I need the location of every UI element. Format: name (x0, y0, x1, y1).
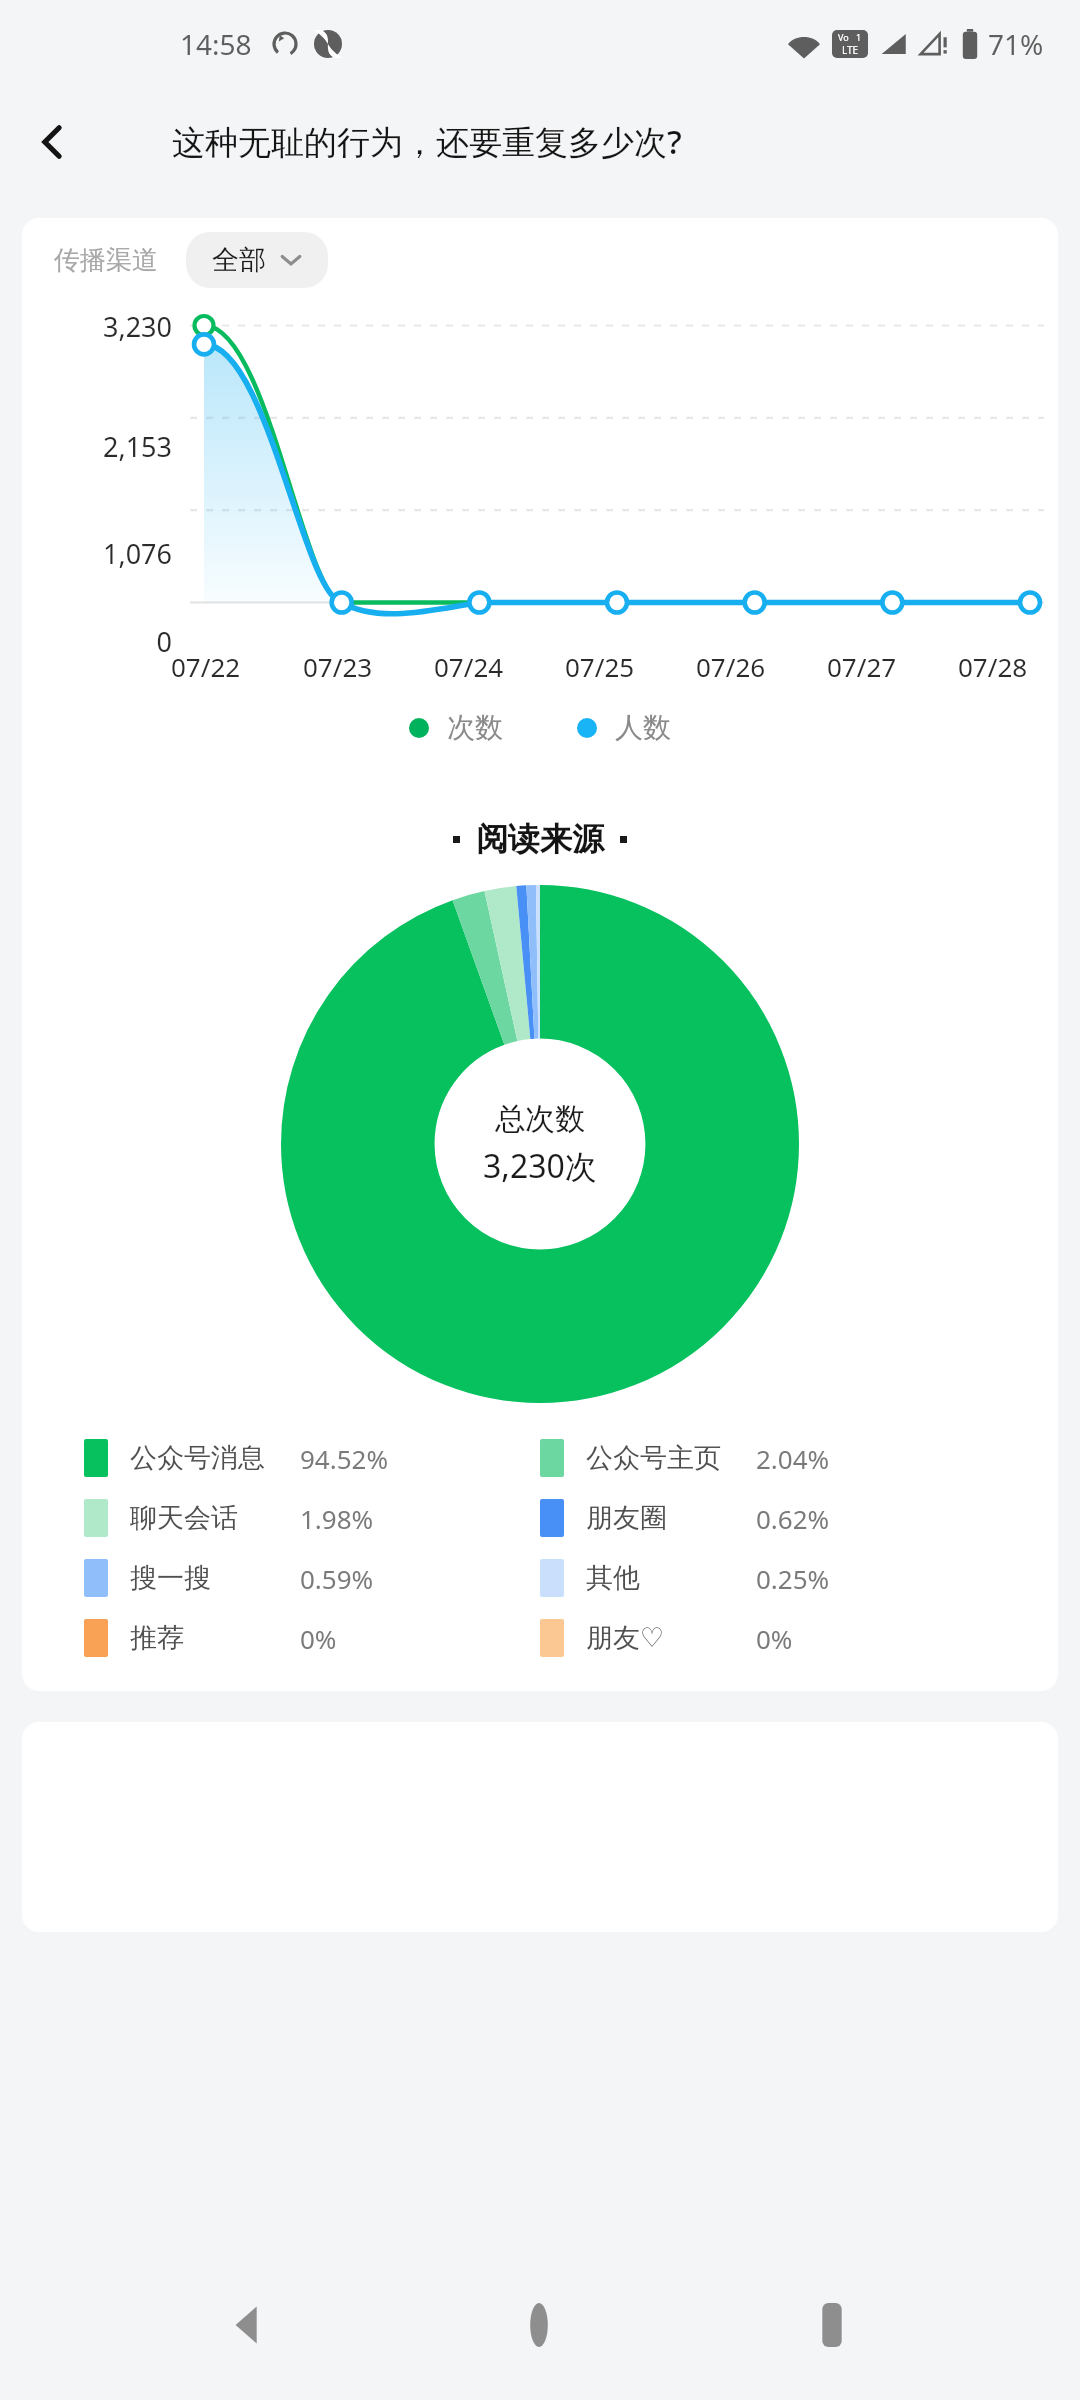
staticText: 人数 (615, 710, 671, 745)
button[interactable]: Recents (787, 2280, 877, 2370)
button[interactable]: Back (202, 2280, 292, 2370)
staticText: 0% (756, 1621, 793, 1656)
staticText: 次数 (447, 710, 503, 745)
staticText: 公众号主页 (586, 1441, 756, 1475)
staticText: 聊天会话 (130, 1501, 300, 1535)
staticText: 07/27 (827, 649, 897, 684)
staticText: 推荐 (130, 1621, 300, 1655)
staticText: 朋友圈 (586, 1501, 756, 1535)
staticText: 07/25 (565, 649, 635, 684)
staticText: Vo (838, 31, 849, 43)
button[interactable]: 聊天会话 (84, 1499, 540, 1537)
button[interactable]: 搜一搜 (84, 1559, 540, 1597)
staticText: 07/23 (303, 649, 373, 684)
staticText: 0.25% (756, 1561, 830, 1596)
staticText: 朋友♡ (586, 1621, 756, 1655)
staticText: 0.62% (756, 1501, 830, 1536)
staticText: 0% (300, 1621, 337, 1656)
staticText: 3,230 (22, 308, 172, 345)
staticText: 1,076 (22, 535, 172, 572)
staticText: 0 (22, 623, 172, 660)
staticText: 1 (856, 31, 862, 43)
button[interactable]: 推荐 (84, 1619, 540, 1657)
staticText: 其他 (586, 1561, 756, 1595)
button[interactable]: 朋友♡ (540, 1619, 996, 1657)
staticText: 阅读来源 (476, 819, 604, 859)
button[interactable]: Back (22, 111, 84, 173)
staticText: 全部 (212, 243, 266, 277)
staticText: 传播渠道 (54, 244, 158, 277)
staticText: 搜一搜 (130, 1561, 300, 1595)
staticText: 1.98% (300, 1501, 374, 1536)
staticText: 总次数 (495, 1100, 585, 1138)
button[interactable]: 人数 (577, 710, 671, 745)
button[interactable]: 公众号消息 (84, 1439, 540, 1477)
staticText: 3,230次 (483, 1144, 597, 1188)
staticText: 07/22 (171, 649, 241, 684)
staticText: 公众号消息 (130, 1441, 300, 1475)
staticText: 71% (988, 25, 1044, 63)
staticText: 0.59% (300, 1561, 374, 1596)
staticText: 94.52% (300, 1441, 389, 1476)
button[interactable]: 其他 (540, 1559, 996, 1597)
staticText: LTE (832, 43, 868, 57)
staticText: 07/24 (434, 649, 504, 684)
button[interactable]: 次数 (409, 710, 503, 745)
staticText: 14:58 (180, 25, 252, 63)
staticText: 2.04% (756, 1441, 830, 1476)
staticText: 07/26 (696, 649, 766, 684)
button[interactable]: 公众号主页 (540, 1439, 996, 1477)
button[interactable]: 朋友圈 (540, 1499, 996, 1537)
staticText: 07/28 (958, 649, 1028, 684)
staticText: 这种无耻的行为，还要重复多少次? (172, 119, 682, 164)
staticText: 2,153 (22, 428, 172, 465)
button[interactable]: 全部 (186, 232, 328, 288)
button[interactable]: Home (494, 2280, 584, 2370)
